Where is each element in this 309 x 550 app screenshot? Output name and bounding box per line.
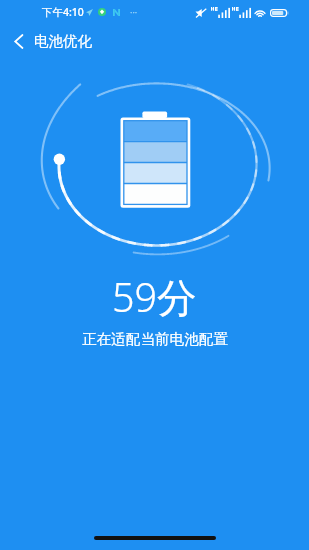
staticText: ··· xyxy=(130,6,138,18)
button[interactable]: Back xyxy=(0,22,37,60)
staticText: 电池优化 xyxy=(34,32,92,50)
staticText: 正在适配当前电池配置 xyxy=(82,330,228,348)
staticText: 59分 xyxy=(112,270,197,324)
staticText: 下午4:10 xyxy=(42,5,84,19)
